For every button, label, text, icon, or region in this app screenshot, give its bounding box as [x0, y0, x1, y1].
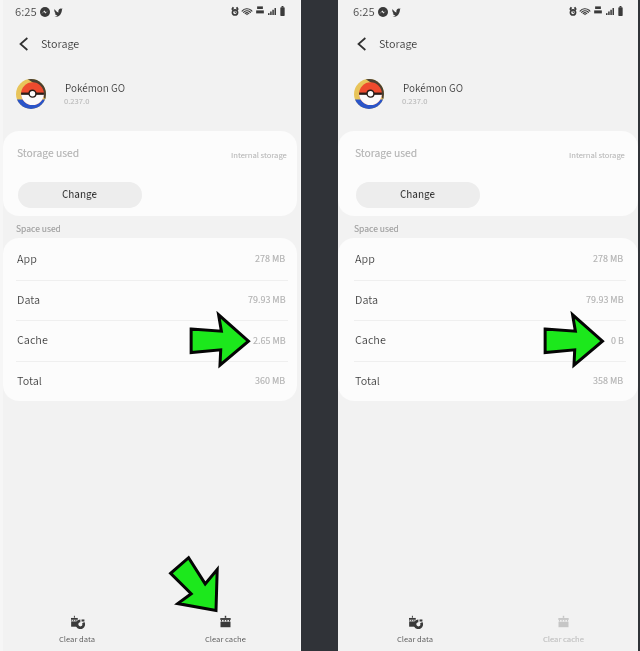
- staticText: 79.93 MB: [586, 293, 624, 307]
- staticText: Internal storage: [231, 149, 287, 161]
- staticText: Data: [355, 292, 379, 309]
- staticText: Total: [17, 373, 42, 390]
- button[interactable]: Clear cache: [489, 603, 637, 651]
- staticText: Storage: [379, 36, 418, 53]
- button[interactable]: Change: [356, 182, 480, 208]
- button[interactable]: App: [338, 238, 638, 280]
- staticText: Cache: [17, 332, 48, 349]
- staticText: 6:25: [15, 3, 37, 21]
- staticText: App: [355, 251, 375, 268]
- button[interactable]: Back: [345, 27, 379, 61]
- staticText: Change: [62, 187, 98, 203]
- button[interactable]: Cache: [338, 320, 638, 361]
- staticText: Storage: [41, 36, 80, 53]
- staticText: Storage used: [17, 145, 80, 161]
- staticText: Total: [355, 373, 380, 390]
- button[interactable]: App: [3, 238, 297, 280]
- staticText: Space used: [354, 222, 399, 236]
- staticText: App: [17, 251, 37, 268]
- staticText: Change: [400, 187, 436, 203]
- staticText: Internal storage: [569, 149, 625, 161]
- staticText: Cache: [355, 332, 386, 349]
- button[interactable]: Clear cache: [151, 603, 299, 651]
- button[interactable]: Clear data: [3, 603, 151, 651]
- button[interactable]: Total: [338, 361, 638, 401]
- staticText: Space used: [16, 222, 61, 236]
- staticText: Data: [17, 292, 41, 309]
- staticText: 0.237.0: [402, 95, 428, 107]
- button[interactable]: Data: [338, 280, 638, 320]
- staticText: 278 MB: [593, 252, 624, 266]
- staticText: Clear cache: [543, 633, 584, 645]
- staticText: Pokémon GO: [403, 81, 464, 97]
- staticText: 0 B: [611, 334, 624, 348]
- button[interactable]: Cache: [3, 320, 297, 361]
- button[interactable]: Clear data: [341, 603, 489, 651]
- button[interactable]: Change: [18, 182, 142, 208]
- staticText: 2.65 MB: [253, 334, 286, 348]
- button[interactable]: Total: [3, 361, 297, 401]
- staticText: 278 MB: [255, 252, 286, 266]
- staticText: Clear data: [59, 633, 95, 645]
- staticText: 0.237.0: [64, 95, 90, 107]
- button[interactable]: Back: [7, 27, 41, 61]
- button[interactable]: Data: [3, 280, 297, 320]
- staticText: 79.93 MB: [248, 293, 286, 307]
- staticText: Storage used: [355, 145, 418, 161]
- staticText: 358 MB: [593, 374, 624, 388]
- staticText: 360 MB: [255, 374, 286, 388]
- staticText: 6:25: [353, 3, 375, 21]
- staticText: Clear cache: [205, 633, 246, 645]
- staticText: Pokémon GO: [65, 81, 126, 97]
- staticText: Clear data: [397, 633, 433, 645]
